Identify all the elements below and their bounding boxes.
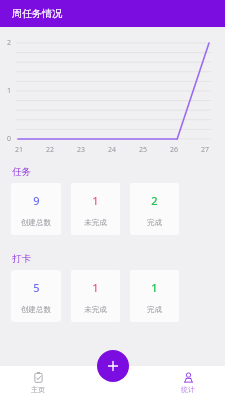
staticText: 1: [92, 280, 99, 295]
staticText: 打卡: [12, 253, 31, 265]
button[interactable]: Add: [97, 350, 129, 382]
staticText: 1: [151, 280, 158, 295]
staticText: 主页: [31, 385, 45, 394]
staticText: 23: [77, 145, 86, 155]
staticText: 27: [201, 145, 210, 155]
staticText: 5: [33, 280, 40, 295]
button[interactable]: 9: [11, 183, 61, 235]
staticText: 9: [33, 193, 40, 208]
staticText: 1: [92, 193, 99, 208]
staticText: 26: [170, 145, 179, 155]
staticText: 周任务情况: [12, 7, 62, 20]
staticText: 1: [7, 86, 12, 96]
button[interactable]: 5: [11, 270, 61, 322]
staticText: 25: [139, 145, 148, 155]
staticText: 完成: [147, 305, 162, 314]
staticText: 0: [7, 134, 12, 144]
button[interactable]: 主页: [21, 369, 55, 397]
staticText: 24: [108, 145, 117, 155]
button[interactable]: 1: [71, 183, 120, 235]
staticText: 未完成: [84, 218, 107, 227]
button[interactable]: 1: [130, 270, 179, 322]
staticText: 完成: [147, 218, 162, 227]
staticText: 2: [7, 38, 12, 48]
button[interactable]: 2: [130, 183, 179, 235]
staticText: 统计: [181, 385, 195, 394]
staticText: 未完成: [84, 305, 107, 314]
staticText: 21: [15, 145, 24, 155]
button[interactable]: 统计: [171, 369, 205, 397]
staticText: 22: [46, 145, 55, 155]
staticText: 创建总数: [21, 218, 51, 227]
staticText: 2: [151, 193, 158, 208]
staticText: 任务: [12, 166, 31, 178]
staticText: 创建总数: [21, 305, 51, 314]
button[interactable]: 1: [71, 270, 120, 322]
